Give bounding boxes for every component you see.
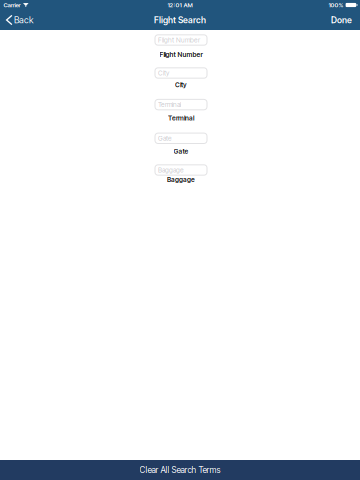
staticText: City <box>158 69 169 77</box>
button[interactable]: Clear All Search Terms <box>0 460 360 480</box>
staticText: Terminal <box>168 114 194 122</box>
staticText: Gate <box>173 147 188 155</box>
staticText: Flight Number <box>159 51 202 59</box>
button[interactable]: Back <box>0 10 39 30</box>
staticText: Gate <box>158 134 172 142</box>
staticText: Baggage <box>167 176 195 184</box>
button[interactable]: Done <box>323 10 360 30</box>
staticText: Baggage <box>158 166 184 174</box>
staticText: 12:01 AM <box>167 1 192 9</box>
staticText: Clear All Search Terms <box>139 465 220 475</box>
staticText: City <box>175 81 187 89</box>
staticText: Flight Number <box>158 36 200 44</box>
staticText: 100% <box>329 1 344 9</box>
staticText: Terminal <box>158 101 181 109</box>
staticText: Flight Search <box>154 15 206 25</box>
staticText: Carrier <box>3 1 20 9</box>
staticText: Done <box>331 15 352 25</box>
staticText: Back <box>14 14 34 25</box>
